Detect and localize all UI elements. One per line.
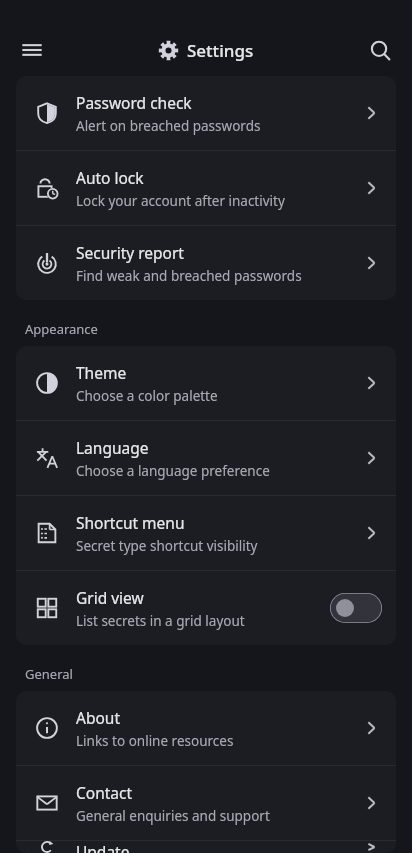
staticText: Alert on breached passwords bbox=[76, 117, 261, 135]
button[interactable]: Language bbox=[16, 421, 396, 495]
staticText: Grid view bbox=[76, 587, 144, 608]
staticText: Security report bbox=[76, 242, 184, 263]
staticText: Settings bbox=[187, 39, 254, 62]
staticText: Contact bbox=[76, 782, 133, 803]
button[interactable]: Grid view toggle bbox=[330, 593, 382, 623]
button[interactable]: Contact bbox=[16, 766, 396, 840]
staticText: List secrets in a grid layout bbox=[76, 612, 245, 630]
staticText: General bbox=[25, 665, 73, 683]
button[interactable]: Security report bbox=[16, 226, 396, 300]
button[interactable]: Shortcut menu bbox=[16, 496, 396, 570]
button[interactable]: Password check bbox=[16, 76, 396, 150]
staticText: Password check bbox=[76, 92, 192, 113]
button[interactable]: Theme bbox=[16, 346, 396, 420]
staticText: Language bbox=[76, 437, 149, 458]
staticText: Update bbox=[76, 841, 130, 853]
staticText: Find weak and breached passwords bbox=[76, 267, 302, 285]
staticText: About bbox=[76, 707, 120, 728]
button[interactable]: Auto lock bbox=[16, 151, 396, 225]
staticText: Choose a color palette bbox=[76, 387, 218, 405]
button[interactable]: About bbox=[16, 691, 396, 765]
button[interactable]: Menu bbox=[14, 32, 50, 68]
staticText: Choose a language preference bbox=[76, 462, 270, 480]
staticText: Lock your account after inactivity bbox=[76, 192, 285, 210]
staticText: Links to online resources bbox=[76, 732, 234, 750]
button[interactable]: Update bbox=[16, 841, 396, 853]
button[interactable]: Grid view bbox=[16, 571, 396, 645]
staticText: Theme bbox=[76, 362, 127, 383]
staticText: Appearance bbox=[25, 320, 98, 338]
staticText: General enquiries and support bbox=[76, 807, 270, 825]
staticText: Shortcut menu bbox=[76, 512, 185, 533]
button[interactable]: Search bbox=[362, 32, 398, 68]
staticText: Auto lock bbox=[76, 167, 144, 188]
staticText: Secret type shortcut visibility bbox=[76, 537, 258, 555]
